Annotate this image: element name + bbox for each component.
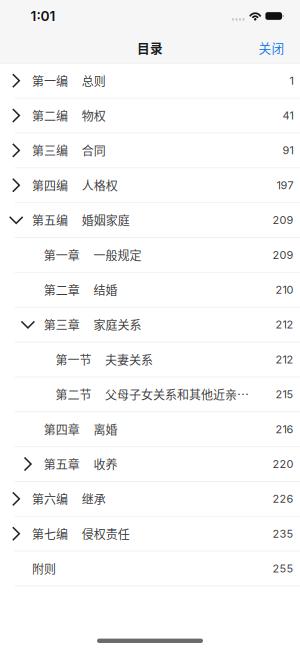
- staticText: 197: [276, 179, 293, 192]
- staticText: 第一章: [44, 246, 80, 264]
- staticText: 结婚: [93, 281, 117, 298]
- staticText: 第五编: [32, 211, 68, 229]
- button[interactable]: 附则: [0, 552, 300, 586]
- button[interactable]: 第三章: [0, 308, 300, 342]
- button[interactable]: 第一章: [0, 238, 300, 272]
- staticText: 209: [272, 213, 293, 227]
- staticText: 210: [275, 283, 293, 296]
- staticText: 离婚: [93, 420, 117, 438]
- staticText: 1:01: [30, 8, 55, 24]
- staticText: 第三章: [44, 316, 80, 333]
- staticText: 收养: [93, 455, 117, 473]
- staticText: 父母子女关系和其他近亲…: [105, 386, 249, 403]
- staticText: 216: [275, 423, 293, 436]
- staticText: 夫妻关系: [105, 351, 153, 368]
- staticText: 第三编: [32, 142, 68, 159]
- staticText: 220: [272, 457, 293, 471]
- staticText: 家庭关系: [93, 316, 141, 333]
- staticText: 第二节: [55, 386, 91, 403]
- staticText: 第一节: [55, 351, 91, 368]
- staticText: 婚姻家庭: [82, 211, 130, 229]
- button[interactable]: 第四编: [0, 168, 300, 202]
- staticText: 目录: [137, 38, 163, 57]
- staticText: 第一编: [32, 72, 68, 89]
- button[interactable]: 第五章: [0, 447, 300, 481]
- staticText: 212: [275, 318, 293, 331]
- staticText: 235: [272, 527, 293, 540]
- button[interactable]: 第二章: [0, 273, 300, 307]
- staticText: 继承: [82, 490, 106, 508]
- staticText: 1: [289, 74, 293, 87]
- staticText: 215: [275, 388, 293, 401]
- staticText: 第二章: [44, 281, 80, 298]
- staticText: 合同: [82, 142, 106, 159]
- button[interactable]: 第二节: [0, 377, 300, 411]
- button[interactable]: 第四章: [0, 412, 300, 446]
- staticText: 关闭: [258, 38, 284, 57]
- staticText: 91: [282, 144, 293, 157]
- staticText: 第五章: [44, 455, 80, 473]
- button[interactable]: 第三编: [0, 133, 300, 167]
- button[interactable]: 第一节: [0, 342, 300, 376]
- staticText: 人格权: [82, 176, 118, 194]
- staticText: 侵权责任: [82, 525, 130, 542]
- button[interactable]: 第五编: [0, 203, 300, 237]
- staticText: 255: [272, 562, 293, 575]
- staticText: 第七编: [32, 525, 68, 542]
- staticText: 一般规定: [93, 246, 141, 264]
- button[interactable]: 第一编: [0, 64, 300, 98]
- staticText: 物权: [82, 107, 106, 124]
- button[interactable]: 第二编: [0, 99, 300, 133]
- staticText: 41: [282, 109, 293, 122]
- button[interactable]: 关闭: [250, 31, 292, 64]
- staticText: 附则: [32, 560, 56, 577]
- staticText: 第四章: [44, 420, 80, 438]
- staticText: 第二编: [32, 107, 68, 124]
- button[interactable]: 第七编: [0, 517, 300, 551]
- staticText: 第六编: [32, 490, 68, 508]
- staticText: 226: [272, 492, 293, 505]
- staticText: 209: [272, 248, 293, 261]
- staticText: 212: [275, 353, 293, 366]
- staticText: 第四编: [32, 176, 68, 194]
- staticText: 总则: [82, 72, 106, 89]
- button[interactable]: 第六编: [0, 482, 300, 516]
